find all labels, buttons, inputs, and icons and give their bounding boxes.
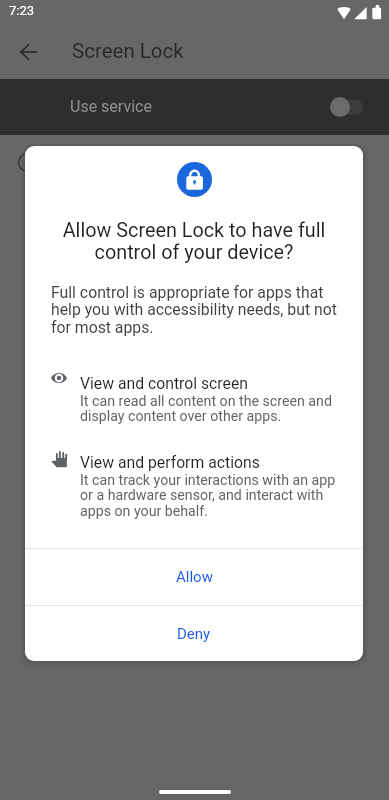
staticText: View and perform actions <box>80 453 260 471</box>
staticText: It can read all content on the screen an… <box>80 393 342 425</box>
staticText: View and control screen <box>80 374 248 392</box>
staticText: Allow Screen Lock to have full control o… <box>49 219 339 263</box>
button[interactable]: Back <box>8 32 48 72</box>
staticText: Allow <box>176 568 213 586</box>
button[interactable]: Use service toggle <box>326 93 366 121</box>
button[interactable]: Deny <box>25 606 363 661</box>
staticText: 7:23 <box>9 3 35 18</box>
staticText: Deny <box>177 625 211 643</box>
button[interactable]: Allow <box>25 549 363 605</box>
staticText: Use service <box>70 97 152 116</box>
staticText: Screen Lock <box>72 39 184 63</box>
staticText: Full control is appropriate for apps tha… <box>51 283 343 337</box>
staticText: It can track your interactions with an a… <box>80 472 342 520</box>
